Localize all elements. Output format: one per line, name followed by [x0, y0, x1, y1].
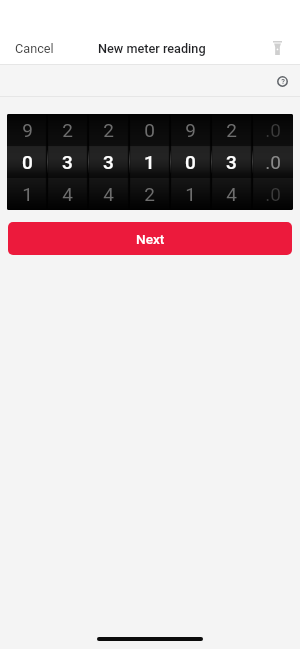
button[interactable]: 0 — [129, 114, 170, 146]
button[interactable]: Torch — [268, 32, 300, 64]
staticText: .0 — [265, 119, 281, 141]
staticText: 2 — [144, 183, 155, 205]
staticText: 2 — [226, 119, 237, 141]
button[interactable]: 3 — [47, 146, 88, 178]
staticText: 3 — [226, 151, 237, 173]
staticText: 2 — [62, 119, 73, 141]
button[interactable]: .0 — [252, 178, 293, 210]
staticText: New meter reading — [98, 41, 206, 56]
staticText: 9 — [185, 119, 196, 141]
button[interactable]: Help — [269, 65, 300, 96]
staticText: .0 — [265, 151, 281, 173]
button[interactable]: 2 — [129, 178, 170, 210]
staticText: 0 — [185, 151, 196, 173]
button[interactable]: 4 — [47, 178, 88, 210]
button[interactable]: 9 — [7, 114, 47, 146]
staticText: ? — [281, 77, 285, 86]
staticText: 4 — [226, 183, 237, 205]
staticText: 4 — [103, 183, 114, 205]
button[interactable]: 1 — [7, 178, 47, 210]
button[interactable]: 0 — [7, 146, 47, 178]
button[interactable]: 1 — [129, 146, 170, 178]
button[interactable]: Next — [8, 222, 292, 255]
button[interactable]: 4 — [88, 178, 129, 210]
staticText: 2 — [103, 119, 114, 141]
button[interactable]: 0 — [170, 146, 211, 178]
staticText: Cancel — [15, 41, 54, 56]
staticText: .0 — [265, 183, 281, 205]
button[interactable]: 3 — [211, 146, 252, 178]
button[interactable]: .0 — [252, 114, 293, 146]
staticText: 0 — [22, 151, 33, 173]
staticText: 3 — [62, 151, 73, 173]
button[interactable]: 4 — [211, 178, 252, 210]
staticText: 4 — [62, 183, 73, 205]
staticText: 0 — [144, 119, 155, 141]
staticText: 1 — [22, 183, 33, 205]
button[interactable]: 2 — [47, 114, 88, 146]
staticText: 9 — [22, 119, 33, 141]
staticText: Next — [136, 231, 165, 247]
button[interactable]: 2 — [211, 114, 252, 146]
staticText: 3 — [103, 151, 114, 173]
button[interactable]: 9 — [170, 114, 211, 146]
button[interactable]: .0 — [252, 146, 293, 178]
button[interactable]: 1 — [170, 178, 211, 210]
staticText: 1 — [185, 183, 196, 205]
staticText: 1 — [144, 151, 155, 173]
button[interactable]: 3 — [88, 146, 129, 178]
button[interactable]: Cancel — [0, 32, 68, 64]
button[interactable]: 2 — [88, 114, 129, 146]
